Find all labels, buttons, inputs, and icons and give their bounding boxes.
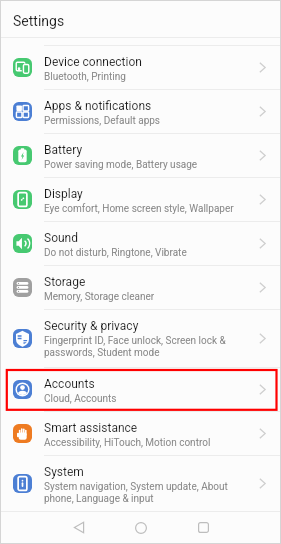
button[interactable]: Security & privacy (1, 310, 280, 367)
button[interactable]: Home (126, 512, 156, 543)
button[interactable]: Apps & notifications (1, 90, 280, 133)
staticText: Display (44, 187, 83, 201)
staticText: Permissions, Default apps (44, 115, 161, 127)
staticText: Fingerprint ID, Face unlock, Screen lock… (44, 335, 226, 359)
button[interactable]: Recent apps (188, 512, 218, 543)
button[interactable]: System (1, 456, 280, 511)
staticText: Device connection (44, 55, 142, 69)
staticText: Settings (13, 13, 65, 29)
staticText: System navigation, System update, About … (44, 481, 228, 505)
button[interactable]: Battery (1, 134, 280, 177)
button[interactable]: Device connection (1, 46, 280, 89)
button[interactable]: Storage (1, 266, 280, 309)
staticText: Battery (44, 143, 83, 157)
staticText: Security & privacy (44, 319, 139, 333)
staticText: Sound (44, 231, 78, 245)
staticText: Accounts (44, 377, 95, 391)
staticText: Smart assistance (44, 421, 138, 435)
staticText: Memory, Storage cleaner (44, 291, 155, 303)
staticText: Cloud, Accounts (44, 393, 117, 405)
button[interactable]: Back (64, 512, 94, 543)
button[interactable]: Smart assistance (1, 412, 280, 455)
staticText: System (44, 465, 84, 479)
staticText: Apps & notifications (44, 99, 152, 113)
staticText: Accessibility, HiTouch, Motion control (44, 437, 211, 449)
button[interactable]: Accounts (1, 368, 280, 411)
staticText: Storage (44, 275, 86, 289)
staticText: Power saving mode, Battery usage (44, 159, 198, 171)
button[interactable]: Display (1, 178, 280, 221)
staticText: Bluetooth, Printing (44, 71, 126, 83)
staticText: Do not disturb, Ringtone, Vibrate (44, 247, 187, 259)
staticText: Eye comfort, Home screen style, Wallpape… (44, 203, 234, 215)
button[interactable]: Sound (1, 222, 280, 265)
